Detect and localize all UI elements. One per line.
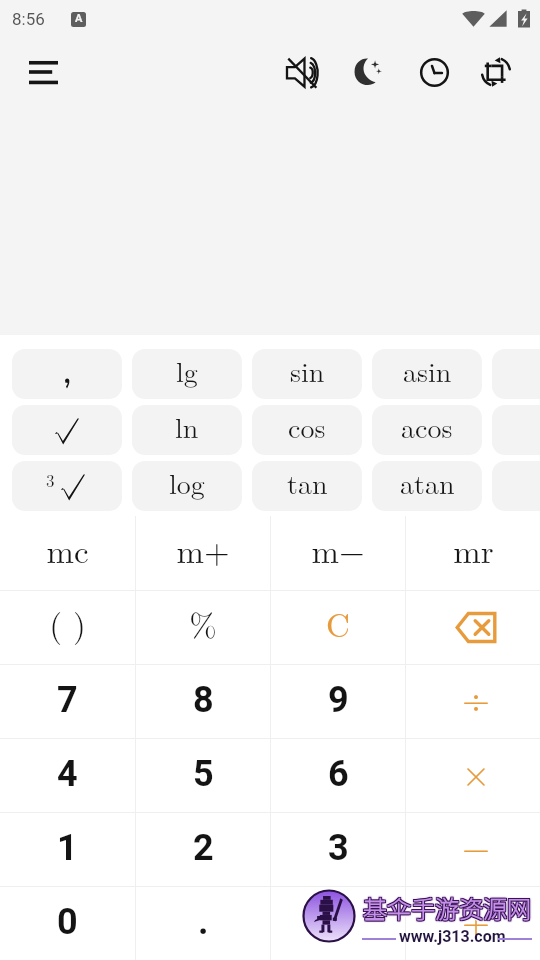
- staticText: 基伞手游资源网: [364, 890, 532, 925]
- button[interactable]: m−: [271, 516, 405, 590]
- staticText: 基伞手游资源网: [365, 890, 533, 925]
- button[interactable]: Menu: [20, 49, 66, 95]
- button[interactable]: Cube root: [12, 461, 122, 511]
- button[interactable]: 5: [136, 738, 270, 812]
- staticText: m−: [311, 526, 365, 573]
- staticText: 0: [57, 901, 78, 943]
- button[interactable]: Decimal point: [136, 886, 270, 960]
- staticText: 8: [193, 679, 214, 721]
- button[interactable]: Subtract: [406, 812, 540, 886]
- staticText: 基伞手游资源网: [361, 891, 529, 926]
- button[interactable]: Multiply: [406, 738, 540, 812]
- staticText: log: [169, 462, 205, 502]
- staticText: 7: [57, 679, 78, 721]
- staticText: 基伞手游资源网: [365, 891, 533, 926]
- button[interactable]: m+: [136, 516, 270, 590]
- staticText: ( ): [49, 600, 86, 647]
- button[interactable]: mr: [406, 516, 540, 590]
- staticText: sin: [290, 350, 325, 390]
- staticText: 基伞手游资源网: [362, 888, 530, 923]
- button[interactable]: 4: [0, 738, 135, 812]
- staticText: 3: [328, 827, 349, 869]
- button[interactable]: 8: [136, 664, 270, 738]
- staticText: 基伞手游资源网: [361, 890, 529, 925]
- button[interactable]: Add: [406, 886, 540, 960]
- staticText: 9: [328, 679, 349, 721]
- staticText: cos: [288, 406, 326, 446]
- staticText: 基伞手游资源网: [363, 890, 531, 925]
- staticText: 基伞手游资源网: [362, 891, 530, 926]
- button[interactable]: Rotate: [473, 49, 519, 95]
- staticText: 基伞手游资源网: [363, 892, 531, 927]
- button[interactable]: acos: [372, 405, 482, 455]
- staticText: %: [189, 600, 217, 647]
- staticText: asin: [403, 350, 452, 390]
- staticText: acos: [401, 406, 453, 446]
- button[interactable]: Divide: [406, 664, 540, 738]
- button[interactable]: Mute: [279, 49, 325, 95]
- button[interactable]: Percent: [136, 590, 270, 664]
- button[interactable]: tan: [252, 461, 362, 511]
- staticText: 基伞手游资源网: [364, 889, 532, 924]
- staticText: 基伞手游资源网: [364, 889, 532, 924]
- staticText: 基伞手游资源网: [365, 889, 533, 924]
- button[interactable]: Backspace: [406, 590, 540, 664]
- button[interactable]: mc: [0, 516, 135, 590]
- staticText: 基伞手游资源网: [362, 890, 530, 925]
- staticText: +: [462, 893, 491, 944]
- staticText: 基伞手游资源网: [362, 889, 530, 924]
- button[interactable]: 3: [271, 812, 405, 886]
- button[interactable]: Plus minus: [271, 886, 405, 960]
- button[interactable]: sin: [252, 349, 362, 399]
- button[interactable]: Comma: [12, 349, 122, 399]
- button[interactable]: asin: [372, 349, 482, 399]
- other: Backspace: [453, 604, 499, 650]
- staticText: 基伞手游资源网: [364, 891, 532, 926]
- staticText: 基伞手游资源网: [362, 891, 530, 926]
- staticText: 基伞手游资源网: [363, 891, 531, 926]
- button[interactable]: 9: [271, 664, 405, 738]
- button[interactable]: 1: [0, 812, 135, 886]
- staticText: 基伞手游资源网: [364, 892, 532, 927]
- staticText: mr: [453, 526, 494, 573]
- staticText: 基伞手游资源网: [362, 890, 530, 925]
- button[interactable]: Night mode: [344, 49, 390, 95]
- staticText: 5: [193, 753, 214, 795]
- button[interactable]: Clear: [271, 590, 405, 664]
- button[interactable]: 7: [0, 664, 135, 738]
- staticText: 1: [57, 827, 78, 869]
- staticText: 基伞手游资源网: [362, 889, 530, 924]
- button[interactable]: History: [411, 49, 457, 95]
- staticText: 基伞手游资源网: [364, 888, 532, 923]
- staticText: ÷: [462, 671, 491, 722]
- button[interactable]: cos: [252, 405, 362, 455]
- button[interactable]: 2: [136, 812, 270, 886]
- staticText: 2: [193, 827, 214, 869]
- staticText: −: [462, 819, 491, 870]
- button[interactable]: lg: [132, 349, 242, 399]
- staticText: 4: [57, 753, 78, 795]
- button[interactable]: atan: [372, 461, 482, 511]
- button[interactable]: 6: [271, 738, 405, 812]
- staticText: 基伞手游资源网: [363, 889, 531, 924]
- button[interactable]: log: [132, 461, 242, 511]
- staticText: lg: [176, 350, 198, 390]
- staticText: A: [75, 12, 83, 25]
- staticText: C: [326, 600, 350, 647]
- button[interactable]: Parentheses: [0, 590, 135, 664]
- staticText: www.j313.com: [399, 927, 506, 946]
- staticText: ×: [462, 745, 491, 796]
- button[interactable]: Square root: [12, 405, 122, 455]
- button[interactable]: 0: [0, 886, 135, 960]
- staticText: ln: [175, 406, 199, 446]
- staticText: atan: [400, 462, 455, 502]
- staticText: 基伞手游资源网: [362, 892, 530, 927]
- staticText: mc: [46, 526, 89, 573]
- staticText: tan: [287, 462, 328, 502]
- staticText: 6: [328, 753, 349, 795]
- button[interactable]: ln: [132, 405, 242, 455]
- staticText: 3: [46, 468, 55, 492]
